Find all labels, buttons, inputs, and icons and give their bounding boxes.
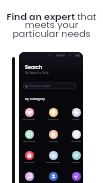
button[interactable]: Health [67, 108, 83, 121]
staticText: Design [67, 161, 83, 164]
button[interactable]: Social Media [44, 151, 62, 164]
button[interactable]: Find your expert [23, 82, 76, 89]
staticText: Technology [20, 140, 38, 143]
staticText: By Category [25, 97, 45, 101]
staticText: Nursing [44, 140, 62, 143]
staticText: Find an expert that meets your particula… [3, 10, 100, 41]
button[interactable]: Psychology [20, 108, 38, 121]
button[interactable]: Coaching [44, 108, 62, 121]
button[interactable]: Technology [20, 130, 38, 143]
staticText: Social Media [44, 161, 62, 164]
staticText: Health [67, 118, 83, 121]
button[interactable]: Shopping [20, 151, 38, 164]
staticText: Search [25, 64, 43, 71]
staticText: By Expert or Role [25, 71, 49, 75]
staticText: Coaching [44, 118, 62, 121]
button[interactable]: Design [67, 151, 83, 164]
button[interactable]: Community [44, 172, 62, 183]
button[interactable]: Nursing [44, 130, 62, 143]
staticText: Business [67, 140, 83, 143]
staticText: Shopping [20, 161, 38, 164]
staticText: Find your expert [29, 84, 51, 88]
staticText: Psychology [20, 118, 38, 121]
button[interactable]: Travel [67, 172, 83, 183]
button[interactable]: Fashion [20, 172, 38, 183]
button[interactable]: Business [67, 130, 83, 143]
